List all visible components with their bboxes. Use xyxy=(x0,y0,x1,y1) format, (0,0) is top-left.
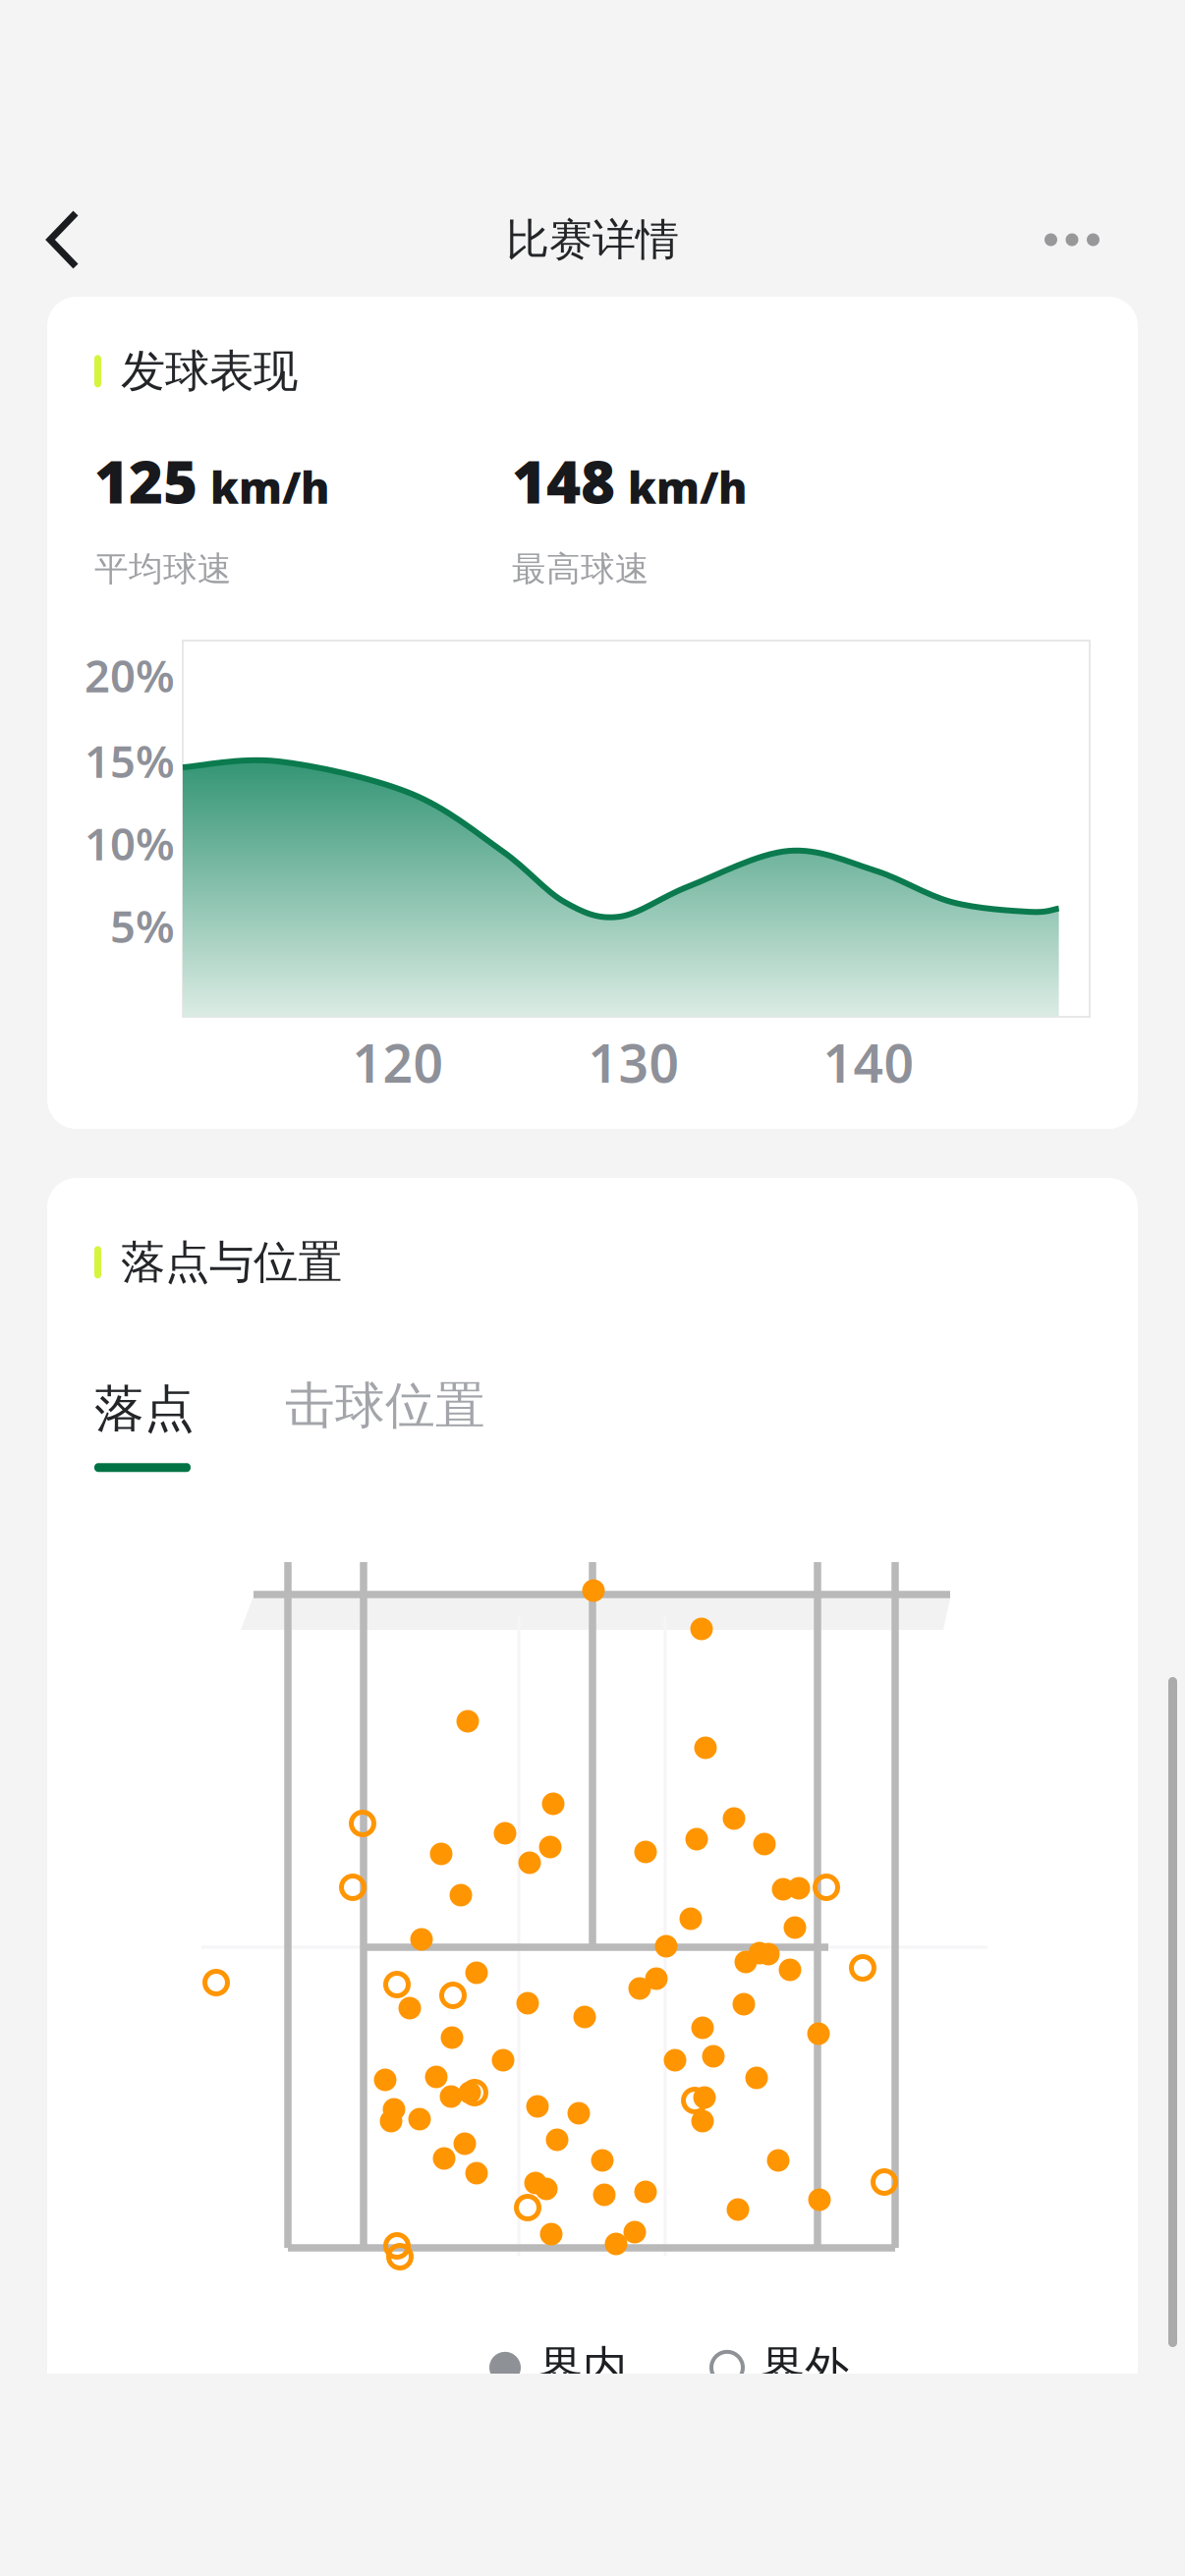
staticText: 130 xyxy=(588,1028,679,1097)
staticText: 20% xyxy=(85,645,175,705)
staticText: 148 xyxy=(512,441,615,520)
staticText: 落点 xyxy=(94,1378,195,1439)
button[interactable]: 击球位置 xyxy=(285,1378,599,1433)
staticText: 140 xyxy=(823,1028,914,1097)
staticText: 15% xyxy=(85,731,175,790)
staticText: 125 xyxy=(94,441,197,520)
staticText: 平均球速 xyxy=(94,548,232,590)
staticText: 界外 xyxy=(761,2340,849,2395)
button[interactable]: Back xyxy=(4,181,122,299)
staticText: 比赛详情 xyxy=(506,213,679,266)
staticText: 界内 xyxy=(538,2340,627,2395)
staticText: 最高球速 xyxy=(512,548,649,590)
staticText: km/h xyxy=(628,458,747,516)
button[interactable]: More options xyxy=(1013,181,1131,299)
button[interactable]: 落点 xyxy=(94,1378,212,1472)
staticText: 落点与位置 xyxy=(121,1235,342,1290)
staticText: 5% xyxy=(110,896,175,955)
staticText: 击球位置 xyxy=(285,1375,485,1436)
staticText: 10% xyxy=(85,813,175,873)
staticText: 120 xyxy=(352,1028,444,1097)
staticText: 发球表现 xyxy=(121,344,298,399)
staticText: km/h xyxy=(210,458,329,516)
